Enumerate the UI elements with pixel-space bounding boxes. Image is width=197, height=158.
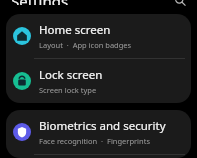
button[interactable]: Biometrics and security <box>6 110 191 154</box>
staticText: Lock screen <box>39 67 103 83</box>
staticText: Biometrics and security <box>39 118 166 134</box>
button[interactable]: Privacy <box>6 155 191 158</box>
button[interactable]: Lock screen <box>6 59 191 103</box>
staticText: Home screen <box>39 22 111 38</box>
button[interactable]: Search <box>171 0 189 7</box>
staticText: Face recognition · Fingerprints <box>39 136 150 146</box>
button[interactable]: Home screen <box>6 14 191 58</box>
staticText: Settings <box>11 0 69 5</box>
staticText: Layout · App icon badges <box>39 40 132 50</box>
staticText: Screen lock type <box>39 85 97 95</box>
